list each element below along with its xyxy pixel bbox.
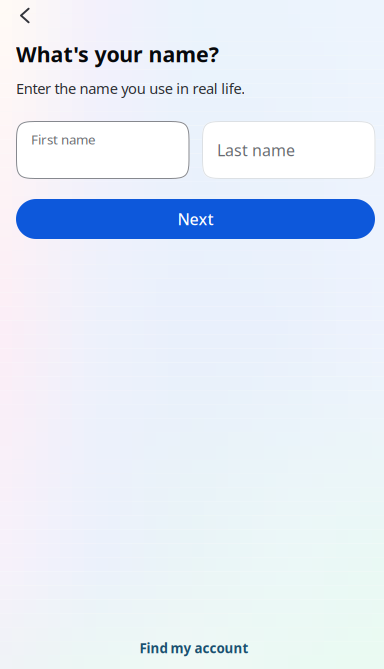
- staticText: Last name: [217, 139, 295, 161]
- staticText: First name: [31, 130, 96, 148]
- staticText: What's your name?: [16, 40, 219, 68]
- button[interactable]: First name: [16, 121, 189, 179]
- staticText: Next: [177, 208, 213, 230]
- button[interactable]: Next: [16, 199, 375, 239]
- staticText: Find my account: [139, 639, 248, 657]
- button[interactable]: Last name: [202, 121, 375, 179]
- button[interactable]: Back: [0, 0, 46, 32]
- staticText: Enter the name you use in real life.: [16, 78, 245, 98]
- button[interactable]: Find my account: [2, 640, 384, 656]
